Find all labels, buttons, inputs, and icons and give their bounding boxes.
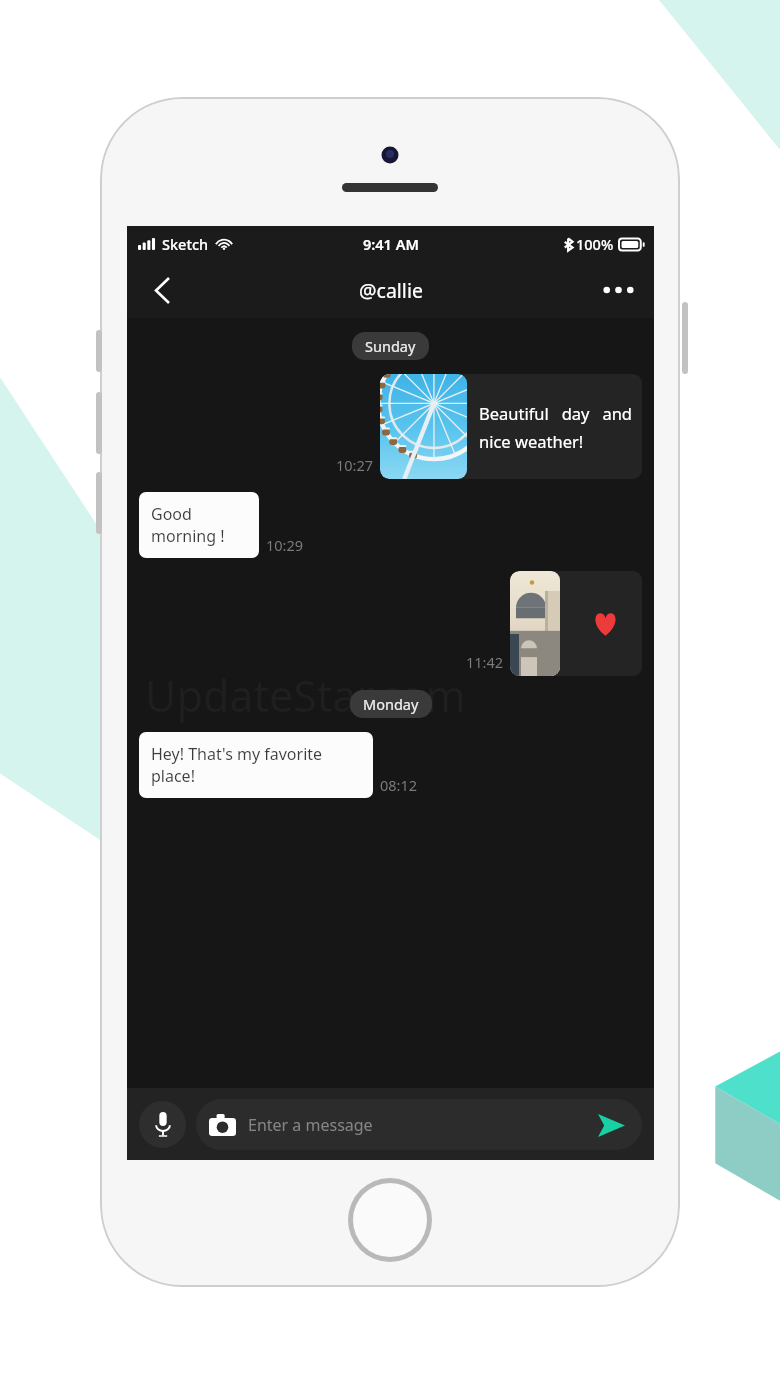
staticText: Monday (363, 694, 419, 714)
button[interactable] (510, 571, 642, 676)
staticText: Enter a message (248, 1114, 373, 1136)
staticText: UpdateStar.com (145, 666, 466, 725)
button[interactable]: Good morning ! (139, 492, 259, 558)
staticText: 08:12 (380, 775, 418, 795)
staticText: Beautiful day and (479, 402, 632, 424)
staticText: Good morning ! (151, 503, 247, 547)
button[interactable]: Sunday (352, 332, 429, 360)
button[interactable]: Enter a message (196, 1099, 642, 1150)
staticText: 11:42 (466, 652, 504, 672)
staticText: Sketch (162, 234, 209, 254)
staticText: Hey! That's my favorite place! (151, 743, 361, 787)
button[interactable]: Record voice message (139, 1101, 186, 1148)
button[interactable]: More options (591, 263, 645, 317)
staticText: Sunday (365, 336, 416, 356)
staticText: 10:29 (266, 535, 304, 555)
staticText: 100% (576, 234, 614, 254)
staticText: @callie (359, 277, 423, 304)
button[interactable]: Monday (350, 690, 432, 718)
staticText: nice weather! (479, 430, 584, 452)
button[interactable]: Back (135, 263, 189, 317)
button[interactable]: Beautiful day and (380, 374, 642, 479)
staticText: 10:27 (336, 455, 374, 475)
staticText: 9:41 AM (363, 234, 419, 254)
button[interactable]: Send (593, 1107, 629, 1143)
button[interactable]: Hey! That's my favorite place! (139, 732, 373, 798)
